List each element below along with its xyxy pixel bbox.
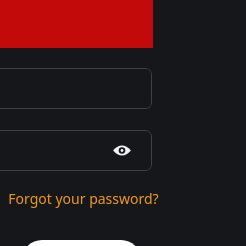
button[interactable]	[0, 68, 152, 109]
button[interactable]: Show password	[110, 138, 134, 162]
button[interactable]	[0, 130, 152, 171]
button[interactable]	[22, 240, 141, 246]
button[interactable]: Forgot your password?	[2, 188, 164, 208]
staticText: Forgot your password?	[8, 189, 159, 208]
